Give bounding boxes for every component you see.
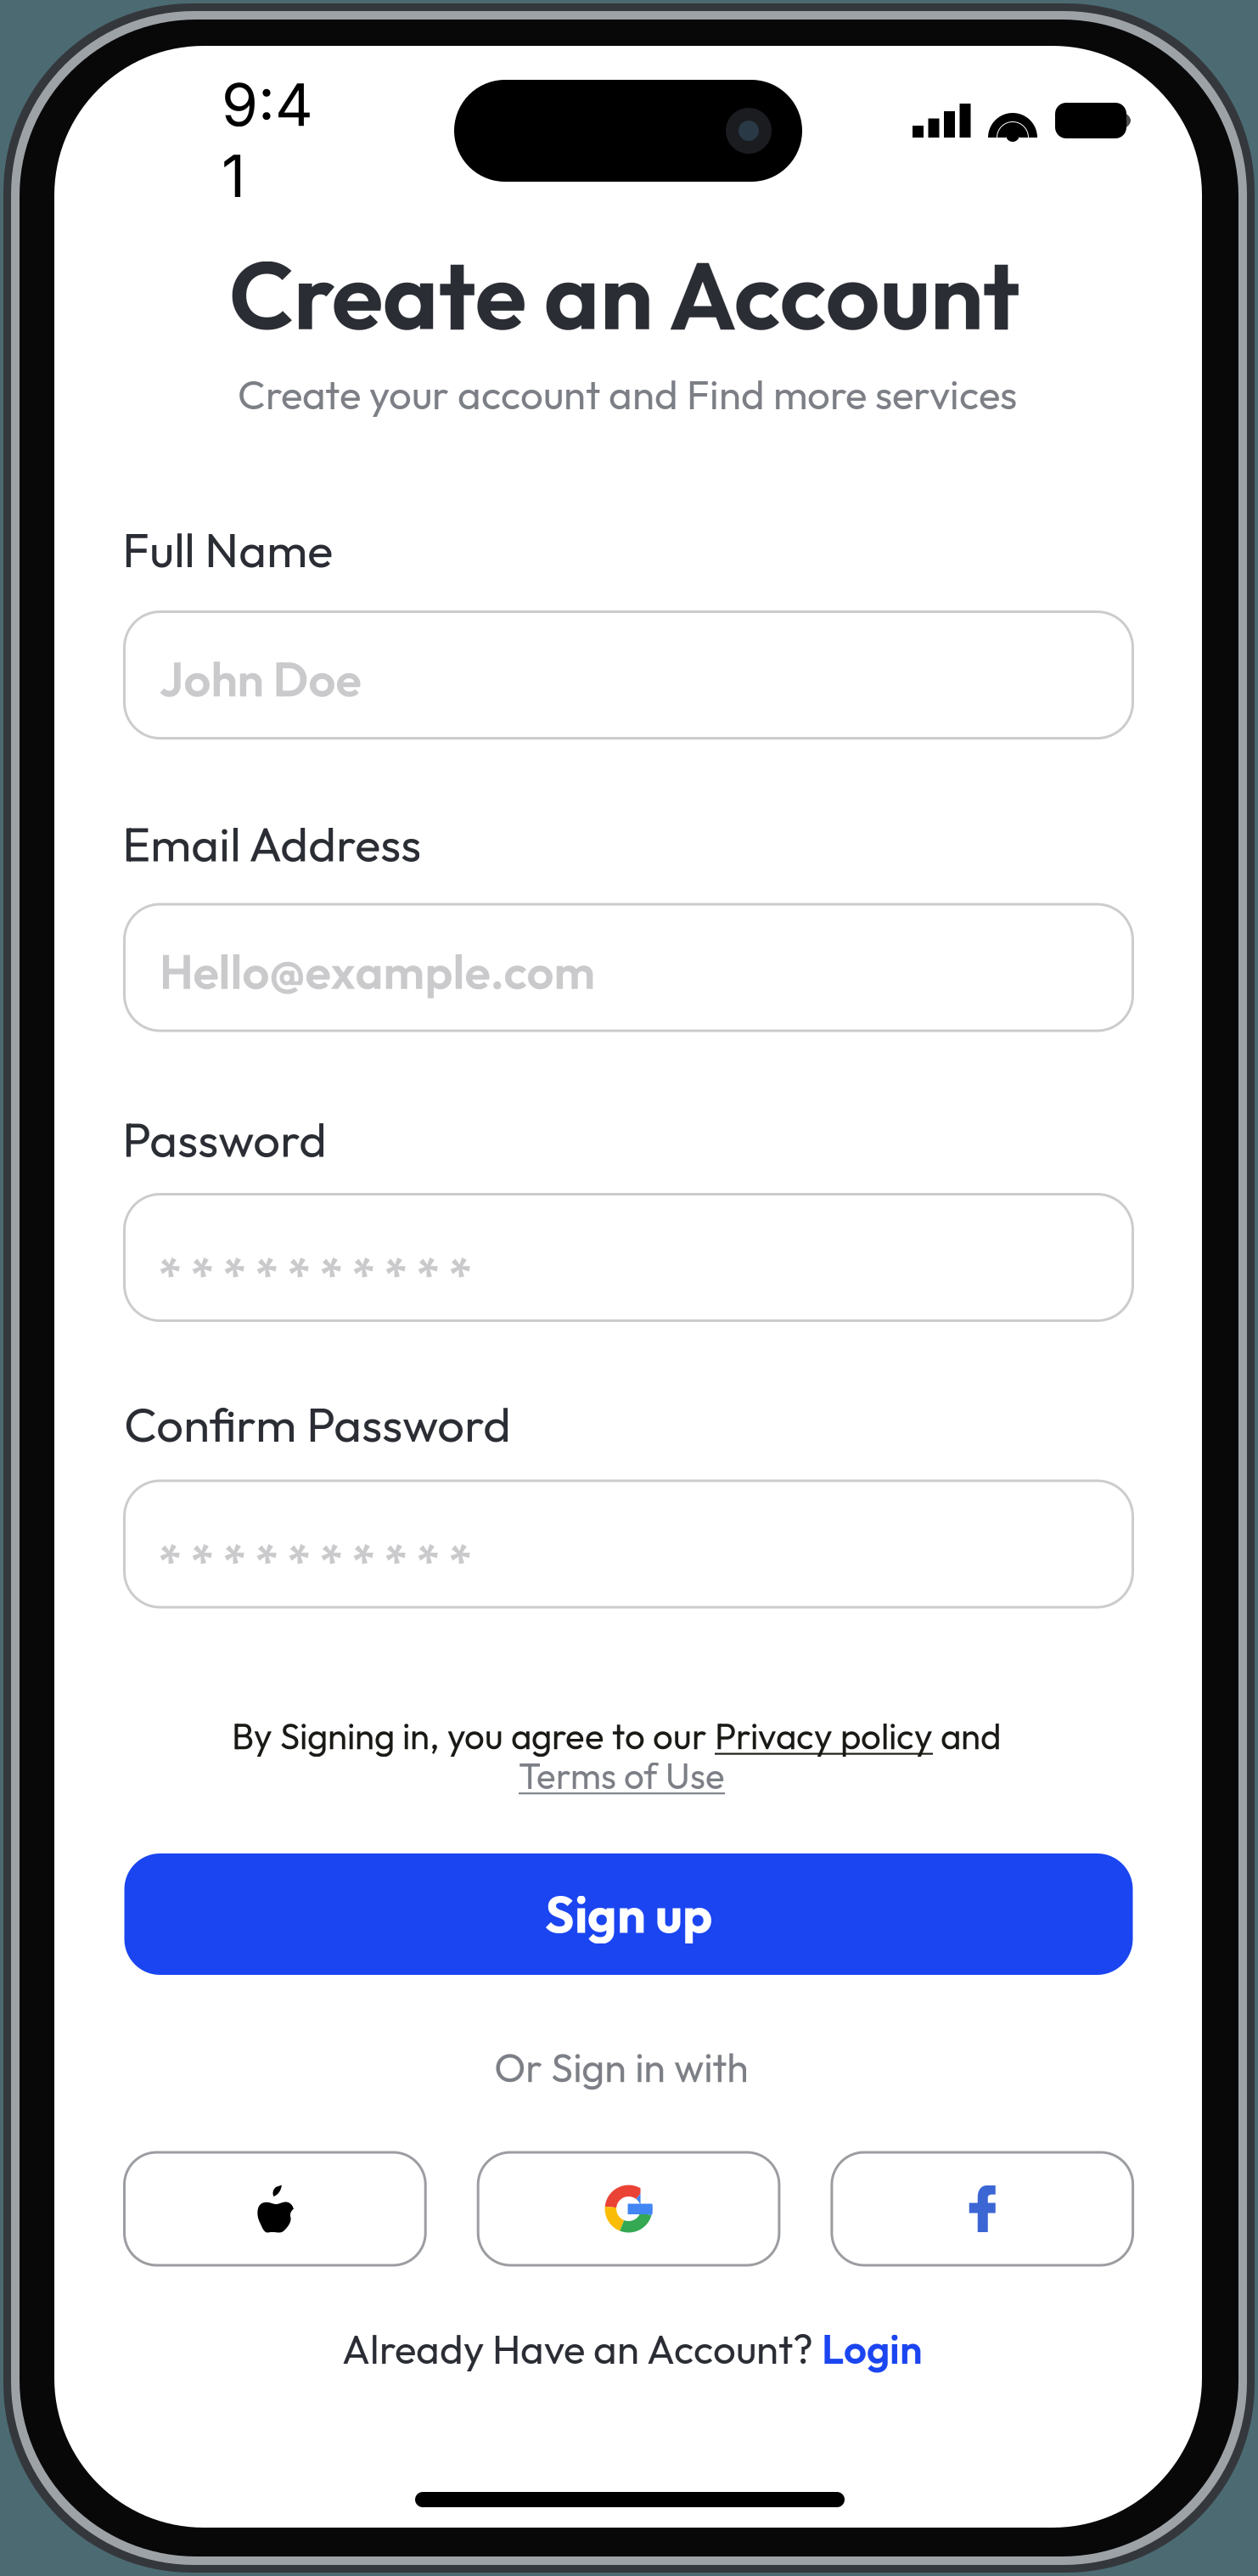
staticText: Email Address [122,814,421,874]
staticText: 9:41 [222,69,313,211]
button[interactable]: Sign up [124,1853,1133,1975]
staticText: Login [822,2324,923,2374]
button[interactable]: * * * * * * * * * * [124,1194,1133,1321]
staticText: Already Have an Account? [342,2324,822,2374]
staticText: Sign up [545,1882,712,1946]
button[interactable]: Hello@example.com [124,904,1133,1031]
staticText: Terms of Use [519,1753,725,1798]
button[interactable]: * * * * * * * * * * [124,1481,1133,1607]
staticText: Full Name [122,520,333,580]
staticText: Create an Account [229,235,1020,354]
staticText: By Signing in, you agree to our Privacy … [232,1714,1001,1758]
button[interactable]: John Doe [124,612,1133,738]
staticText: * * * * * * * * * * [158,1531,472,1591]
staticText: Create your account and Find more servic… [238,369,1017,420]
staticText: John Doe [159,649,361,709]
button[interactable]: Sign in with Facebook [832,2152,1133,2265]
staticText: * * * * * * * * * * [158,1245,472,1305]
button[interactable]: Sign in with Apple [124,2152,425,2265]
staticText: Confirm Password [124,1394,511,1454]
staticText: Or Sign in with [494,2042,749,2092]
staticText: Password [122,1109,327,1169]
button[interactable]: Already Have an Account? [342,2323,923,2375]
staticText: Hello@example.com [159,941,595,1001]
button[interactable]: Sign in with Google [478,2152,779,2265]
